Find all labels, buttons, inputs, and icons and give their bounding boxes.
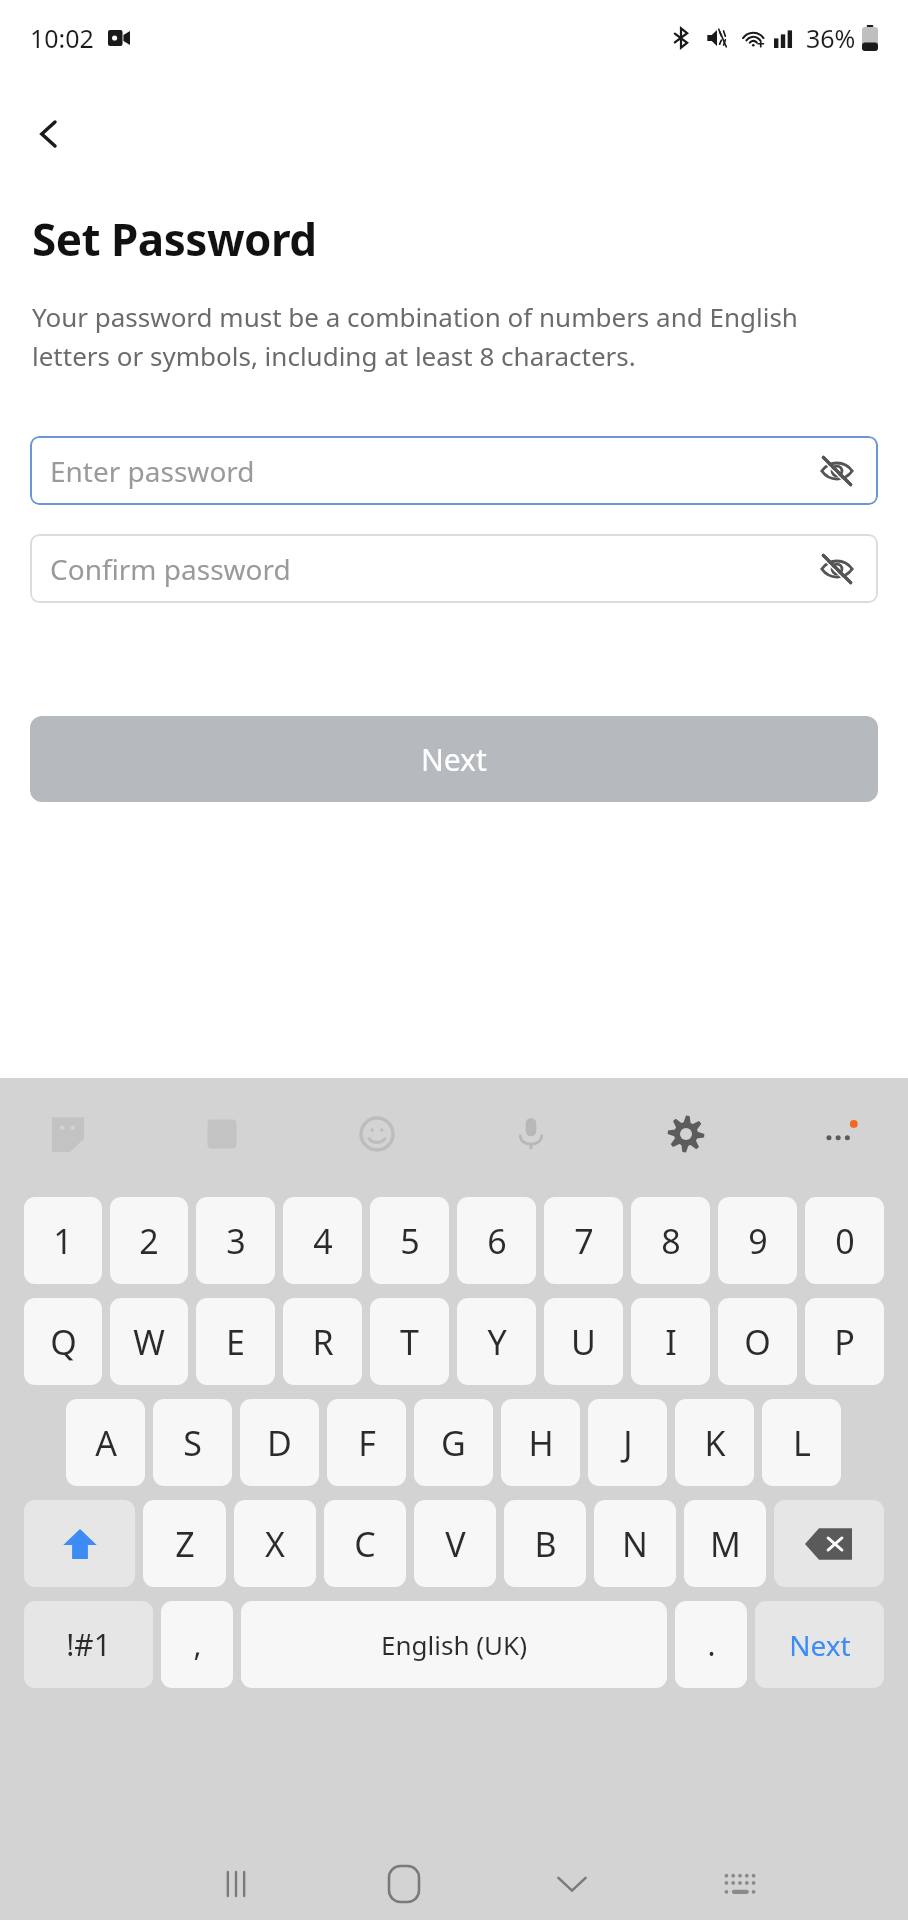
staticText: O <box>744 1319 771 1365</box>
staticText: !#1 <box>66 1624 111 1665</box>
button[interactable]: 1 <box>24 1197 102 1284</box>
button[interactable]: B <box>504 1500 586 1587</box>
button[interactable]: M <box>684 1500 766 1587</box>
button[interactable]: Key <box>774 1500 884 1587</box>
button[interactable]: 8 <box>631 1197 710 1284</box>
button[interactable]: English (UK) <box>241 1601 667 1688</box>
button[interactable]: P <box>805 1298 884 1385</box>
staticText: . <box>707 1624 716 1665</box>
button[interactable]: Change keyboard <box>656 1848 824 1920</box>
button[interactable]: Recents <box>152 1848 320 1920</box>
button[interactable]: N <box>594 1500 676 1587</box>
button[interactable]: Next <box>30 716 878 802</box>
staticText: R <box>312 1319 334 1365</box>
staticText: H <box>528 1420 554 1466</box>
button[interactable]: GIF <box>184 1096 260 1172</box>
button[interactable]: K <box>675 1399 754 1486</box>
button[interactable]: O <box>718 1298 797 1385</box>
button[interactable]: 2 <box>110 1197 188 1284</box>
staticText: , <box>193 1624 202 1665</box>
button[interactable]: T <box>370 1298 449 1385</box>
staticText: Y <box>487 1319 507 1365</box>
staticText: 3 <box>226 1218 246 1264</box>
staticText: I <box>665 1319 677 1365</box>
staticText: J <box>623 1420 633 1466</box>
button[interactable]: Key <box>24 1500 135 1587</box>
button[interactable]: Hide keyboard <box>488 1848 656 1920</box>
button[interactable]: 4 <box>283 1197 362 1284</box>
button[interactable]: V <box>414 1500 496 1587</box>
staticText: C <box>354 1521 376 1567</box>
staticText: 36% <box>806 21 856 55</box>
staticText: 6 <box>487 1218 507 1264</box>
button[interactable]: C <box>324 1500 406 1587</box>
button[interactable]: Z <box>143 1500 226 1587</box>
staticText: 0 <box>835 1218 855 1264</box>
staticText: P <box>834 1319 855 1365</box>
button[interactable]: A <box>66 1399 145 1486</box>
button[interactable]: !#1 <box>24 1601 153 1688</box>
staticText: 4 <box>313 1218 333 1264</box>
button[interactable]: F <box>327 1399 406 1486</box>
staticText: Q <box>50 1319 77 1365</box>
staticText: 9 <box>748 1218 768 1264</box>
button[interactable]: 6 <box>457 1197 536 1284</box>
staticText: A <box>95 1420 117 1466</box>
button[interactable]: More options <box>802 1096 878 1172</box>
staticText: W <box>133 1319 165 1365</box>
button[interactable]: S <box>153 1399 232 1486</box>
staticText: English (UK) <box>381 1627 527 1662</box>
staticText: S <box>183 1420 202 1466</box>
staticText: 10:02 <box>30 21 94 55</box>
button[interactable]: Emoji <box>339 1096 415 1172</box>
button[interactable]: Q <box>24 1298 102 1385</box>
staticText: N <box>622 1521 648 1567</box>
button[interactable]: Show password <box>810 444 864 498</box>
button[interactable]: R <box>283 1298 362 1385</box>
staticText: K <box>704 1420 726 1466</box>
staticText: Next <box>421 739 487 780</box>
button[interactable]: , <box>161 1601 233 1688</box>
button[interactable]: Home <box>320 1848 488 1920</box>
staticText: X <box>265 1521 285 1567</box>
staticText: Next <box>789 1626 851 1664</box>
staticText: 7 <box>574 1218 594 1264</box>
staticText: Enter password <box>50 452 255 490</box>
button[interactable]: Next <box>755 1601 884 1688</box>
button[interactable]: J <box>588 1399 667 1486</box>
staticText: G <box>441 1420 466 1466</box>
staticText: D <box>267 1420 292 1466</box>
button[interactable]: Stickers <box>30 1096 106 1172</box>
button[interactable]: Voice input <box>493 1096 569 1172</box>
staticText: L <box>793 1420 811 1466</box>
button[interactable]: W <box>110 1298 188 1385</box>
staticText: 8 <box>661 1218 681 1264</box>
button[interactable]: 5 <box>370 1197 449 1284</box>
button[interactable]: Keyboard settings <box>648 1096 724 1172</box>
button[interactable]: 0 <box>805 1197 884 1284</box>
staticText: B <box>534 1521 557 1567</box>
button[interactable]: 7 <box>544 1197 623 1284</box>
staticText: Your password must be a combination of n… <box>32 299 876 373</box>
button[interactable]: G <box>414 1399 493 1486</box>
staticText: Set Password <box>32 209 317 269</box>
button[interactable]: Back <box>18 103 80 165</box>
staticText: T <box>400 1319 419 1365</box>
button[interactable]: 9 <box>718 1197 797 1284</box>
staticText: Confirm password <box>50 550 291 588</box>
staticText: U <box>571 1319 596 1365</box>
button[interactable]: U <box>544 1298 623 1385</box>
button[interactable]: Show password <box>810 542 864 596</box>
button[interactable]: . <box>675 1601 747 1688</box>
button[interactable]: L <box>762 1399 841 1486</box>
button[interactable]: I <box>631 1298 710 1385</box>
button[interactable]: D <box>240 1399 319 1486</box>
button[interactable]: H <box>501 1399 580 1486</box>
button[interactable]: X <box>234 1500 316 1587</box>
button[interactable]: E <box>196 1298 275 1385</box>
button[interactable]: Confirm password <box>30 534 878 603</box>
button[interactable]: 3 <box>196 1197 275 1284</box>
staticText: E <box>226 1319 245 1365</box>
button[interactable]: Enter password <box>30 436 878 505</box>
button[interactable]: Y <box>457 1298 536 1385</box>
